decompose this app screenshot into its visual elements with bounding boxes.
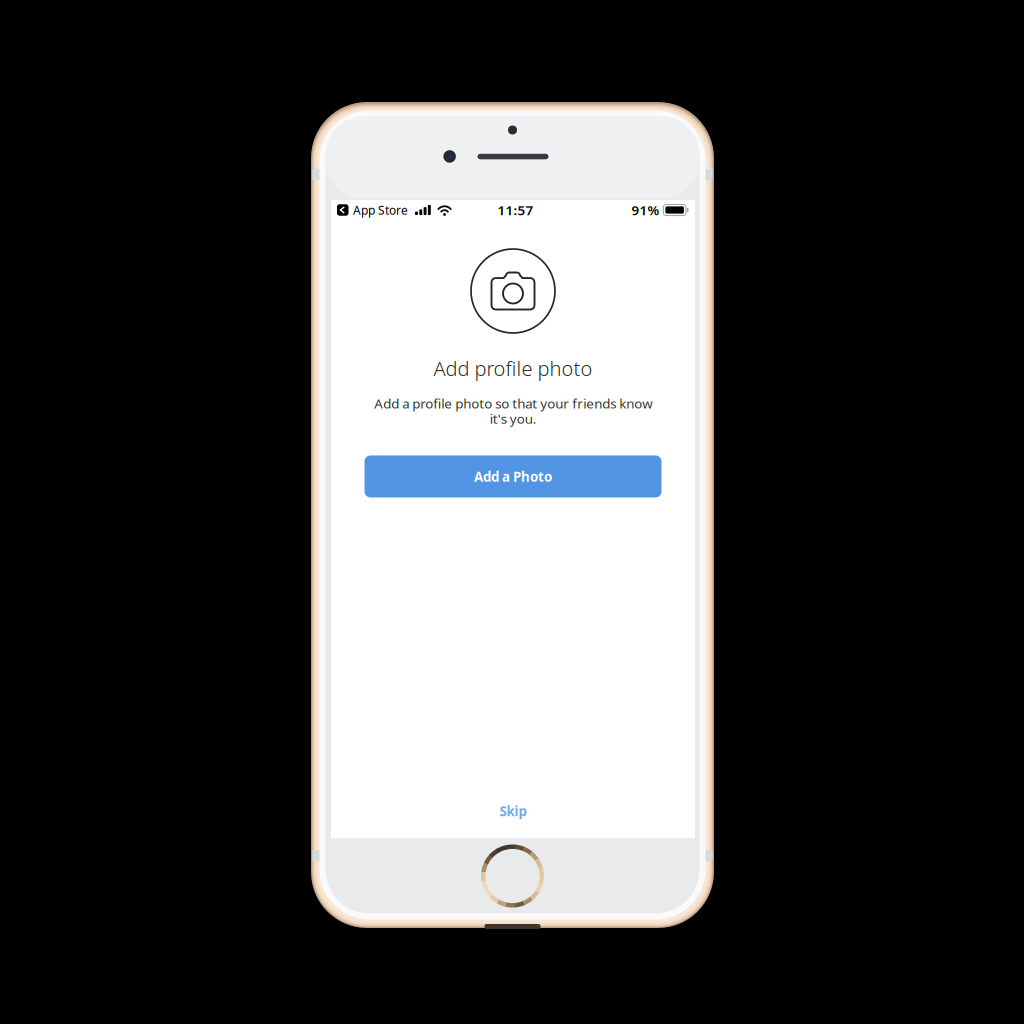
staticText: App Store (353, 202, 408, 218)
staticText: Add profile photo (433, 355, 592, 382)
staticText: Skip (499, 802, 526, 820)
button[interactable]: Add a Photo (364, 455, 661, 497)
button[interactable]: Add profile photo (471, 249, 555, 333)
button[interactable]: Skip (471, 798, 555, 824)
staticText: Add a profile photo so that your friends… (374, 395, 652, 427)
button[interactable]: Back to App Store (337, 202, 408, 218)
staticText: 11:57 (497, 201, 533, 219)
staticText: Add a Photo (474, 468, 552, 485)
staticText: 91% (631, 201, 659, 219)
